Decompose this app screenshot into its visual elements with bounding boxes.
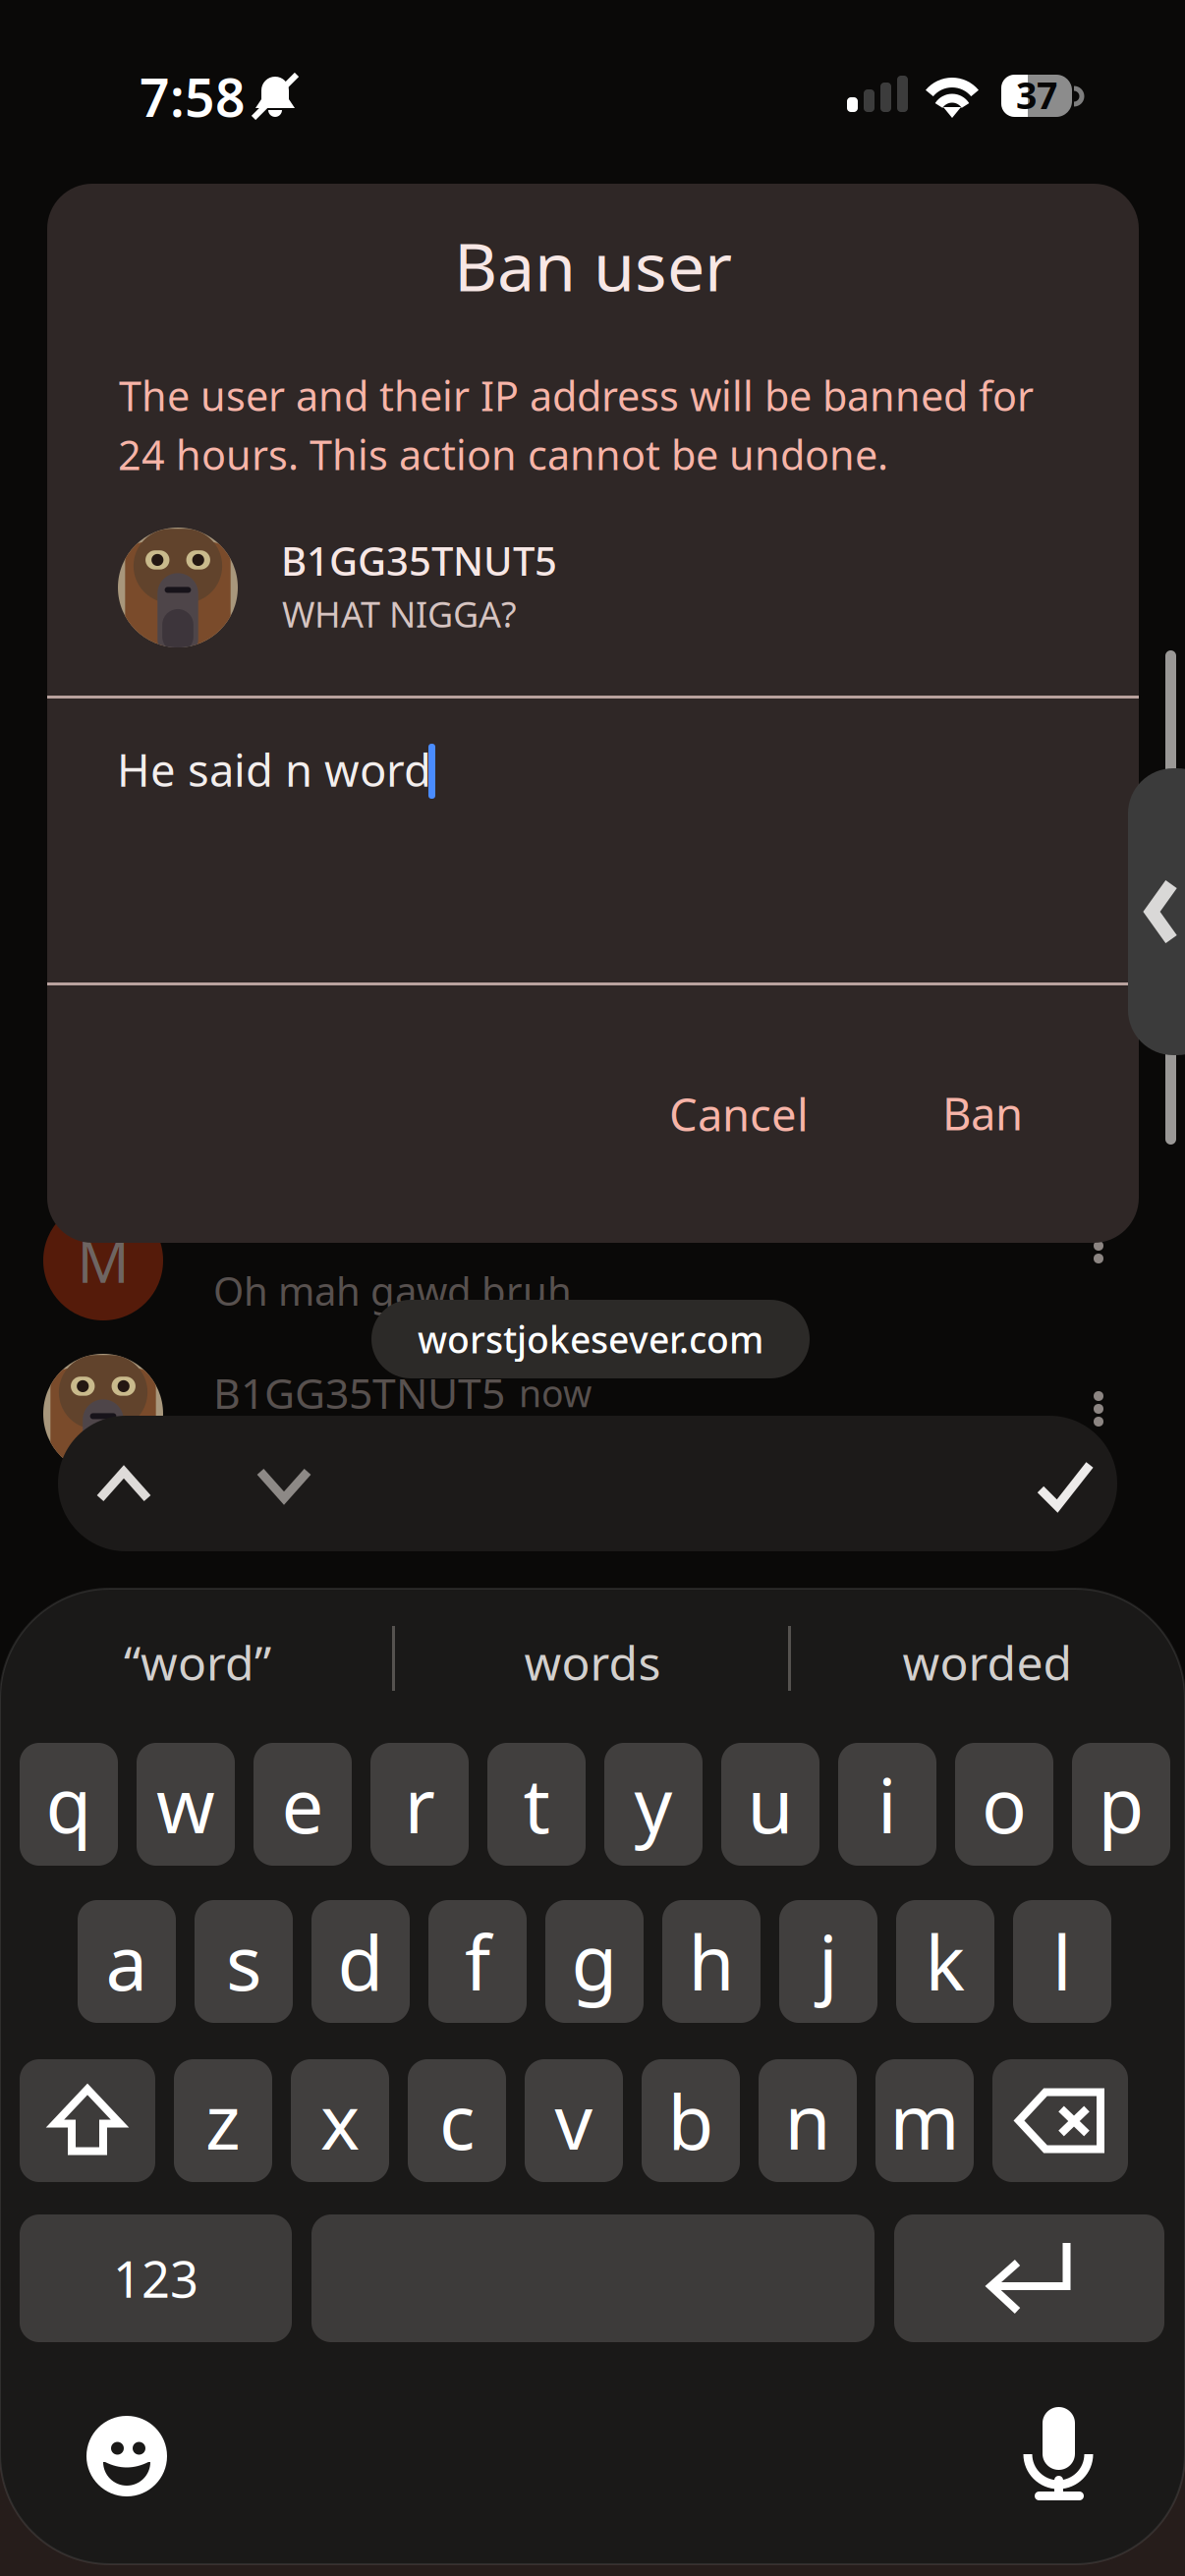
button[interactable]: Next field xyxy=(256,1467,312,1503)
staticText: s xyxy=(226,1912,261,2011)
button[interactable]: g xyxy=(545,1900,644,2023)
staticText: Oh mah gawd bruh xyxy=(213,1264,572,1317)
staticText: g xyxy=(571,1912,618,2011)
button[interactable]: k xyxy=(896,1900,994,2023)
staticText: worded xyxy=(903,1631,1072,1694)
button[interactable]: n xyxy=(759,2059,857,2182)
button[interactable]: o xyxy=(955,1743,1053,1866)
staticText: 37 xyxy=(1016,70,1057,119)
staticText: p xyxy=(1098,1755,1144,1854)
staticText: i xyxy=(877,1755,897,1854)
button[interactable]: l xyxy=(1013,1900,1111,2023)
staticText: words xyxy=(524,1631,661,1694)
button[interactable]: w xyxy=(137,1743,235,1866)
button[interactable]: More options xyxy=(1079,1218,1118,1273)
button[interactable]: v xyxy=(525,2059,623,2182)
staticText: a xyxy=(106,1912,148,2011)
staticText: The user and their IP address will be ba… xyxy=(119,368,1034,422)
button[interactable]: m xyxy=(875,2059,974,2182)
button[interactable]: Delete xyxy=(992,2059,1128,2182)
staticText: 123 xyxy=(113,2245,198,2311)
button[interactable]: t xyxy=(487,1743,586,1866)
button[interactable]: “word” xyxy=(0,1608,395,1716)
button[interactable]: Cancel xyxy=(613,1055,865,1173)
staticText: Ban xyxy=(942,1084,1023,1143)
staticText: Cancel xyxy=(669,1085,809,1144)
button[interactable]: h xyxy=(662,1900,761,2023)
button[interactable]: j xyxy=(779,1900,877,2023)
staticText: He said n word xyxy=(117,740,431,799)
staticText: t xyxy=(523,1755,550,1854)
staticText: now xyxy=(519,1369,592,1417)
button[interactable]: r xyxy=(370,1743,469,1866)
button[interactable]: worded xyxy=(790,1608,1185,1716)
button[interactable]: a xyxy=(78,1900,176,2023)
button[interactable]: i xyxy=(838,1743,936,1866)
button[interactable]: Shift xyxy=(20,2059,155,2182)
button[interactable]: Emoji keyboard xyxy=(86,2416,167,2496)
staticText: c xyxy=(439,2071,475,2170)
button[interactable]: x xyxy=(291,2059,389,2182)
staticText: l xyxy=(1052,1912,1072,2011)
button[interactable]: s xyxy=(195,1900,293,2023)
button[interactable]: b xyxy=(642,2059,740,2182)
button[interactable]: q xyxy=(20,1743,118,1866)
staticText: 24 hours. This action cannot be undone. xyxy=(118,427,888,481)
staticText: h xyxy=(688,1912,734,2011)
button[interactable]: Back xyxy=(1128,768,1185,1055)
staticText: B1GG35TNUT5 xyxy=(213,1365,505,1420)
button[interactable] xyxy=(311,2214,875,2342)
button[interactable]: More options xyxy=(1079,1381,1118,1436)
button[interactable]: f xyxy=(428,1900,527,2023)
staticText: q xyxy=(46,1755,92,1854)
button[interactable]: z xyxy=(174,2059,272,2182)
staticText: “word” xyxy=(124,1631,271,1694)
staticText: m xyxy=(890,2071,959,2170)
staticText: v xyxy=(555,2071,593,2170)
button[interactable]: Return xyxy=(894,2214,1164,2342)
button[interactable]: Dictation xyxy=(1024,2407,1095,2503)
button[interactable]: Previous field xyxy=(96,1467,152,1503)
staticText: d xyxy=(338,1912,384,2011)
staticText: u xyxy=(747,1755,793,1854)
staticText: z xyxy=(205,2071,241,2170)
staticText: x xyxy=(320,2071,360,2170)
button[interactable]: c xyxy=(408,2059,506,2182)
button[interactable]: Ban xyxy=(889,1054,1076,1172)
staticText: Ban user xyxy=(454,221,732,310)
staticText: k xyxy=(925,1912,965,2011)
staticText: worstjokesever.com xyxy=(418,1315,763,1363)
staticText: f xyxy=(465,1912,490,2011)
button[interactable]: 123 xyxy=(20,2214,292,2342)
staticText: r xyxy=(404,1755,435,1854)
staticText: 7:58 xyxy=(140,62,246,131)
button[interactable]: d xyxy=(311,1900,410,2023)
button[interactable]: words xyxy=(395,1608,790,1716)
staticText: o xyxy=(982,1755,1027,1854)
button[interactable]: y xyxy=(604,1743,703,1866)
staticText: j xyxy=(818,1912,838,2011)
staticText: e xyxy=(282,1755,324,1854)
staticText: b xyxy=(668,2071,714,2170)
staticText: B1GG35TNUT5 xyxy=(281,534,557,587)
staticText: y xyxy=(634,1755,673,1854)
staticText: n xyxy=(785,2071,831,2170)
staticText: WHAT NIGGA? xyxy=(282,590,517,637)
button[interactable]: p xyxy=(1072,1743,1170,1866)
staticText: w xyxy=(156,1755,215,1854)
button[interactable]: Done xyxy=(1037,1461,1094,1511)
button[interactable]: u xyxy=(721,1743,819,1866)
staticText: M xyxy=(77,1222,129,1299)
button[interactable]: e xyxy=(254,1743,352,1866)
